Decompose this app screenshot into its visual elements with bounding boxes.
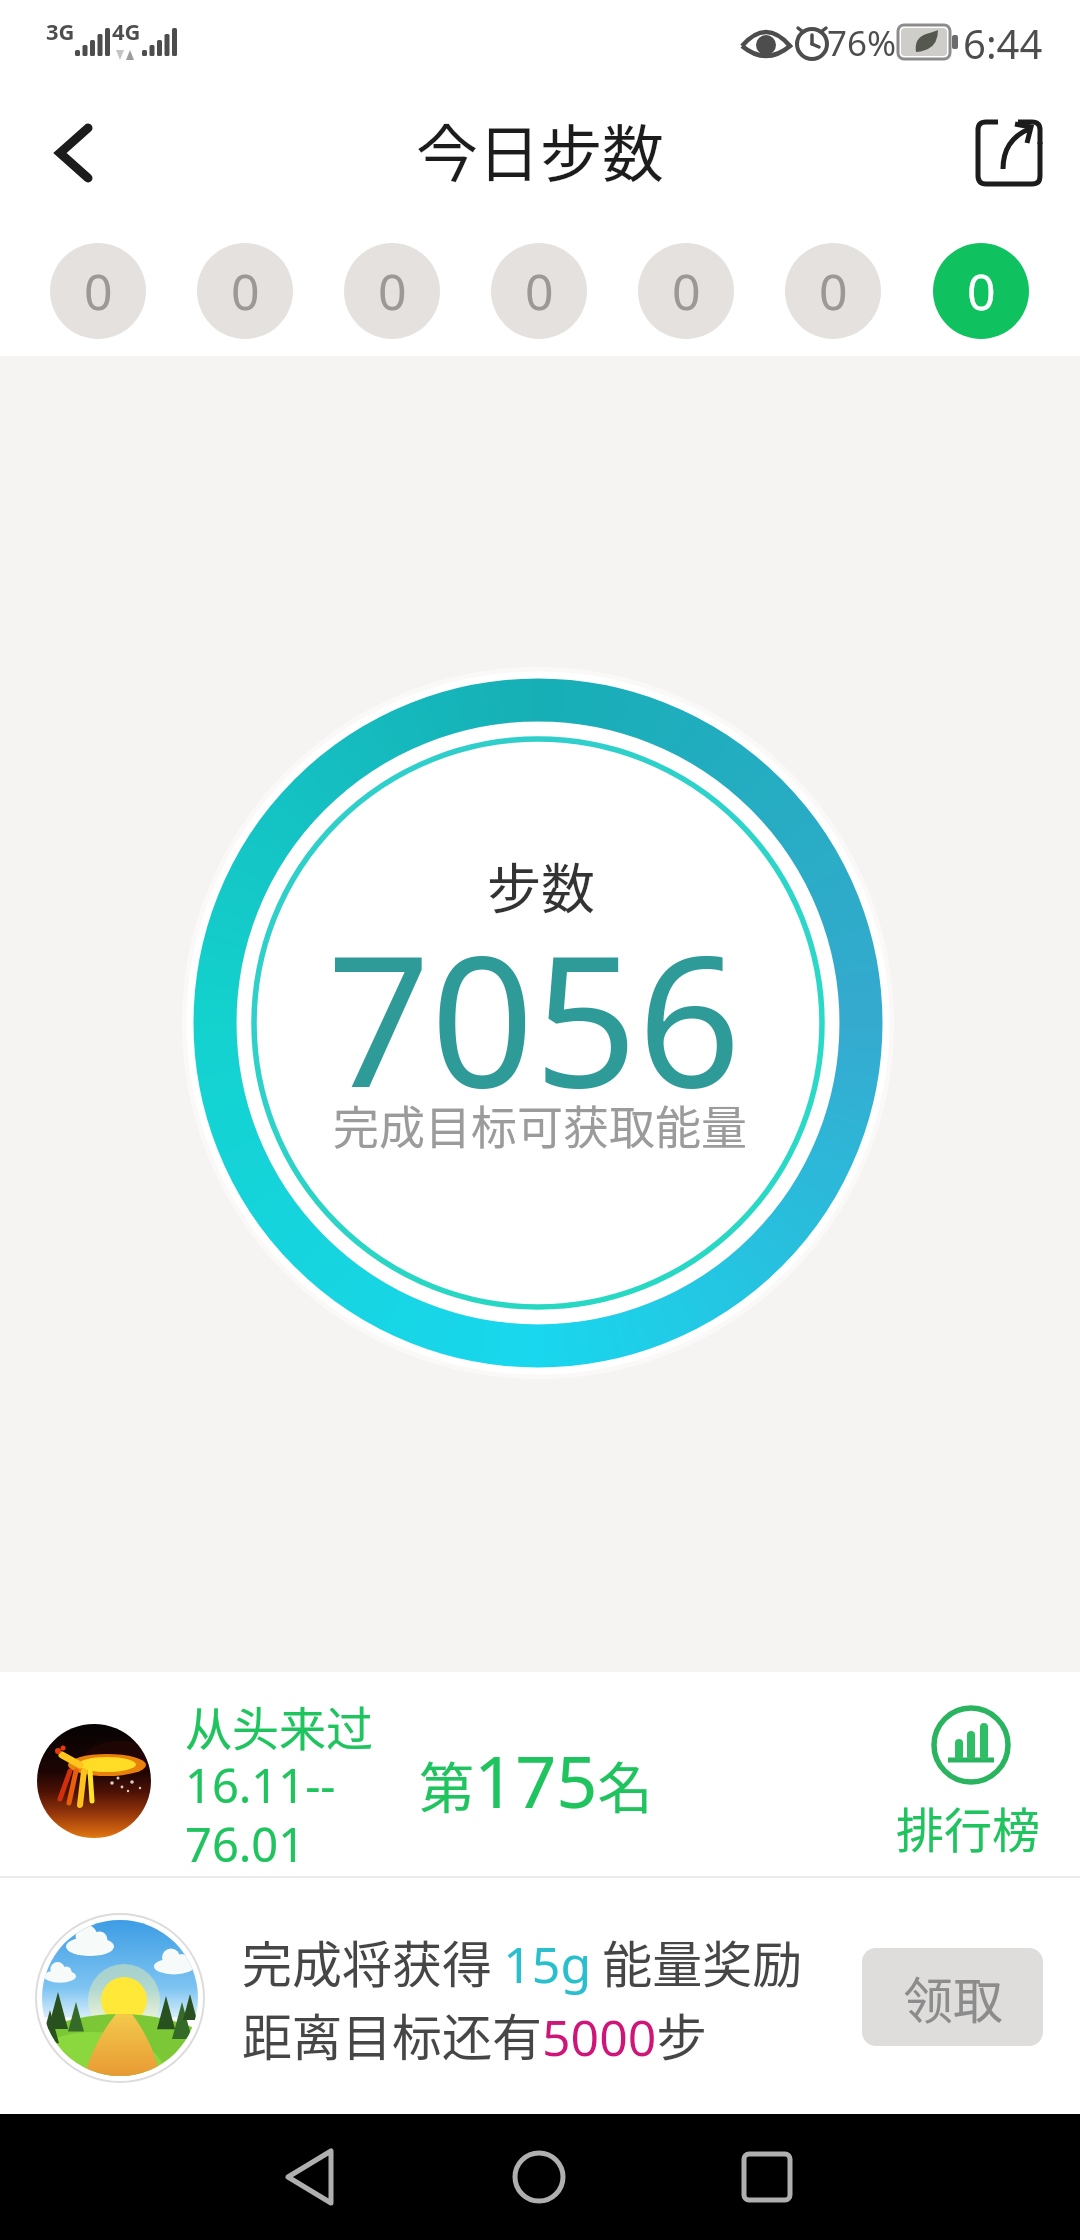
staticText: 0 bbox=[231, 257, 260, 325]
staticText: 3G bbox=[46, 16, 75, 46]
staticText: 0 bbox=[819, 257, 848, 325]
staticText: 步数 bbox=[487, 846, 595, 924]
button[interactable]: 领取 bbox=[862, 1948, 1043, 2046]
button[interactable] bbox=[489, 2130, 589, 2225]
staticText: 今日步数 bbox=[416, 105, 665, 195]
staticText: 0 bbox=[525, 257, 554, 325]
staticText: 0 bbox=[84, 257, 113, 325]
button[interactable] bbox=[30, 110, 120, 200]
staticText: 0 bbox=[967, 257, 996, 325]
button[interactable] bbox=[260, 2130, 360, 2225]
button[interactable] bbox=[900, 1690, 1050, 1870]
button[interactable]: 0 bbox=[638, 243, 734, 339]
staticText: 76% bbox=[827, 19, 897, 67]
staticText: 76.01 bbox=[185, 1812, 306, 1876]
staticText: 6:44 bbox=[963, 16, 1043, 70]
button[interactable]: 0 bbox=[933, 243, 1029, 339]
staticText: 完成将获得 15g 能量奖励 bbox=[242, 1925, 803, 1998]
staticText: 完成目标可获取能量 bbox=[333, 1091, 747, 1158]
button[interactable]: 0 bbox=[50, 243, 146, 339]
button[interactable]: 0 bbox=[785, 243, 881, 339]
button[interactable]: 0 bbox=[197, 243, 293, 339]
button[interactable]: 0 bbox=[491, 243, 587, 339]
staticText: 距离目标还有5000步 bbox=[242, 1998, 707, 2071]
staticText: 0 bbox=[672, 257, 701, 325]
staticText: 排行榜 bbox=[896, 1792, 1041, 1862]
button[interactable] bbox=[960, 105, 1060, 205]
staticText: 第175名 bbox=[419, 1731, 653, 1829]
staticText: 领取 bbox=[903, 1961, 1003, 2033]
staticText: 从头来过 bbox=[185, 1691, 373, 1759]
button[interactable]: 0 bbox=[344, 243, 440, 339]
staticText: 7056 bbox=[327, 894, 742, 1141]
staticText: 16.11-- bbox=[185, 1753, 336, 1817]
staticText: 0 bbox=[378, 257, 407, 325]
staticText: 4G bbox=[112, 16, 141, 46]
button[interactable] bbox=[717, 2130, 817, 2225]
